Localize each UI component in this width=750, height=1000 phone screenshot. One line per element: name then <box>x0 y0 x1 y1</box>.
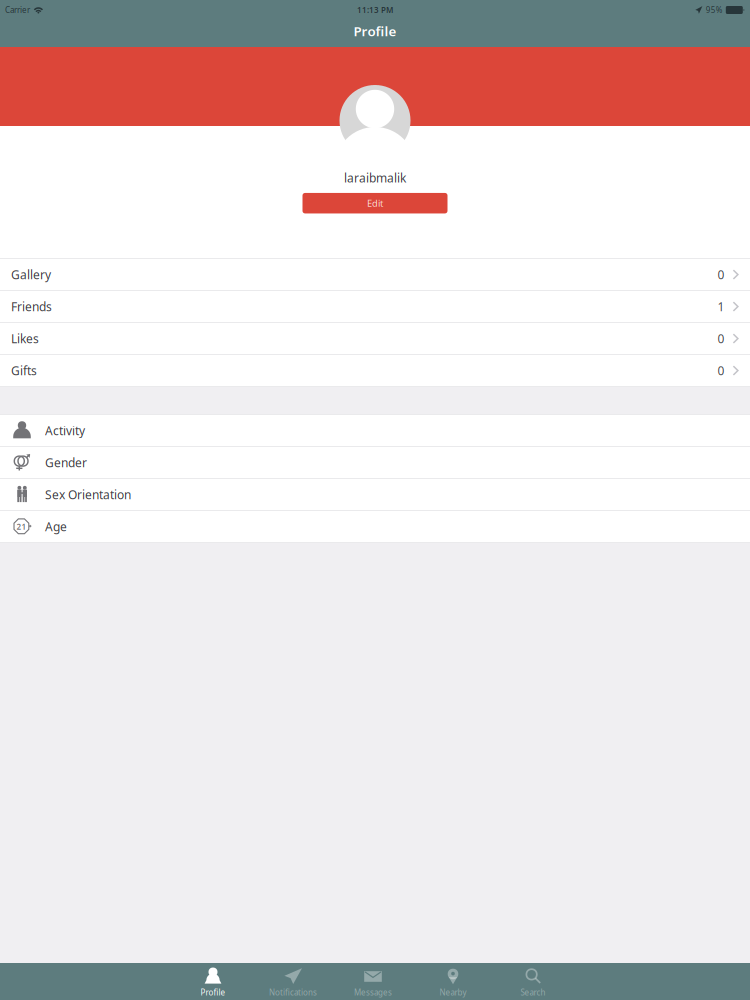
staticText: Search <box>520 987 545 998</box>
staticText: Gallery <box>11 266 51 282</box>
staticText: 11:13 PM <box>357 5 393 15</box>
staticText: Profile <box>353 22 396 40</box>
button[interactable]: Notifications <box>253 963 333 1000</box>
staticText: Age <box>45 518 67 534</box>
staticText: Sex Orientation <box>45 486 131 502</box>
staticText: 1 <box>717 298 724 314</box>
button[interactable]: Sex Orientation <box>0 479 750 510</box>
staticText: 21 <box>16 521 26 532</box>
button[interactable]: Likes <box>0 323 750 354</box>
staticText: Likes <box>11 330 39 346</box>
staticText: Notifications <box>269 987 317 998</box>
staticText: Friends <box>11 298 52 314</box>
staticText: Profile <box>200 987 225 998</box>
staticText: Activity <box>45 422 85 438</box>
staticText: Gifts <box>11 362 37 378</box>
button[interactable]: Edit <box>302 193 447 213</box>
button[interactable]: Gallery <box>0 259 750 290</box>
staticText: 0 <box>717 330 724 346</box>
staticText: laraibmalik <box>344 170 406 186</box>
button[interactable]: Activity <box>0 415 750 446</box>
staticText: Messages <box>354 987 392 998</box>
button[interactable]: Messages <box>333 963 413 1000</box>
button[interactable]: 21 <box>0 511 750 542</box>
staticText: 95% <box>706 5 723 15</box>
button[interactable]: Gifts <box>0 355 750 386</box>
staticText: Nearby <box>439 987 466 998</box>
button[interactable]: Friends <box>0 291 750 322</box>
staticText: Edit <box>367 197 383 209</box>
staticText: Carrier <box>5 5 30 15</box>
button[interactable]: Nearby <box>413 963 493 1000</box>
button[interactable]: Profile <box>173 963 253 1000</box>
staticText: 0 <box>717 362 724 378</box>
staticText: Gender <box>45 454 87 470</box>
button[interactable]: Search <box>493 963 573 1000</box>
staticText: 0 <box>717 266 724 282</box>
button[interactable]: Gender <box>0 447 750 478</box>
